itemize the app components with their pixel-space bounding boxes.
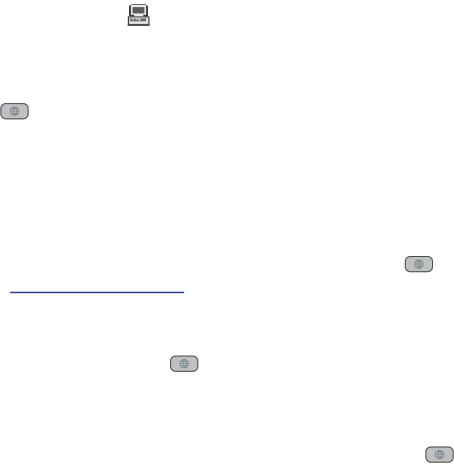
button[interactable]: Choose language	[170, 356, 198, 372]
button[interactable]: Choose language	[425, 446, 454, 463]
button[interactable]: Choose language	[0, 103, 29, 119]
button[interactable]: Choose language	[405, 256, 433, 272]
